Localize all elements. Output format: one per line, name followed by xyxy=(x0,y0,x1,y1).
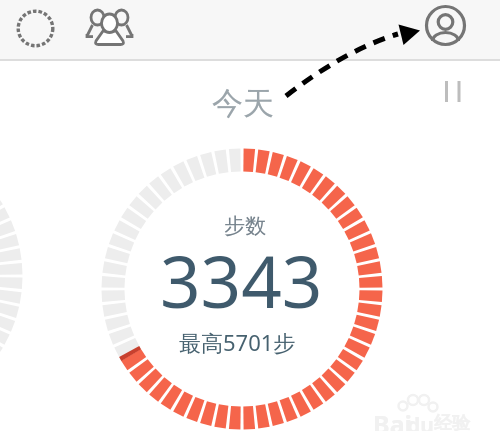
staticText: 步数 xyxy=(224,213,266,239)
staticText: du xyxy=(407,411,434,431)
staticText: 3343 xyxy=(160,232,323,322)
staticText: 今天 xyxy=(212,84,274,123)
staticText: 最高5701步 xyxy=(179,327,296,357)
staticText: Bai xyxy=(373,407,413,431)
staticText: 经验 xyxy=(434,412,470,431)
button[interactable] xyxy=(423,3,468,48)
button[interactable] xyxy=(14,7,58,51)
button[interactable] xyxy=(438,74,466,108)
button[interactable] xyxy=(86,4,134,52)
